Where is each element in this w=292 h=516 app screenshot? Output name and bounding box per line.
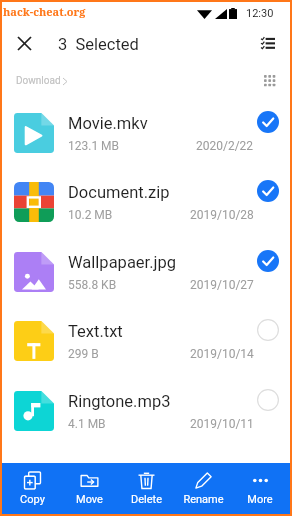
button[interactable]: Ringtone.mp3	[2, 376, 290, 446]
staticText: 2019/10/28	[190, 208, 254, 222]
staticText: 558.8 KB	[68, 278, 117, 292]
staticText: Ringtone.mp3	[68, 392, 171, 411]
button[interactable]: Select all	[254, 29, 282, 57]
staticText: 2019/10/11	[190, 417, 254, 431]
button[interactable]: Not selected	[257, 319, 279, 341]
staticText: Movie.mkv	[68, 114, 148, 133]
staticText: 3 Selected	[58, 35, 139, 54]
button[interactable]: Text.txt	[2, 306, 290, 376]
button[interactable]: Selected	[257, 111, 279, 133]
staticText: 299 B	[68, 347, 99, 361]
button[interactable]: Document.zip	[2, 167, 290, 237]
button[interactable]: Wallpapaer.jpg	[2, 237, 290, 307]
staticText: 2019/10/14	[190, 347, 254, 361]
button[interactable]: Movie.mkv	[2, 98, 290, 168]
staticText: Rename	[183, 493, 224, 506]
staticText: 2020/2/22	[196, 139, 254, 153]
button[interactable]: More	[233, 463, 287, 514]
button[interactable]: Delete	[119, 463, 173, 514]
staticText: Delete	[131, 493, 162, 506]
button[interactable]: Close selection	[10, 29, 38, 57]
staticText: Text.txt	[68, 322, 123, 341]
button[interactable]: Move	[62, 463, 116, 514]
button[interactable]: Grid view	[259, 70, 281, 92]
staticText: Wallpapaer.jpg	[68, 253, 177, 272]
staticText: Move	[76, 493, 103, 506]
button[interactable]: Selected	[257, 180, 279, 202]
staticText: Document.zip	[68, 183, 170, 202]
button[interactable]: Not selected	[257, 389, 279, 411]
button[interactable]: Copy	[5, 463, 59, 514]
staticText: 10.2 MB	[68, 208, 113, 222]
staticText: hack-cheat.org	[3, 4, 86, 19]
staticText: Copy	[20, 493, 45, 506]
button[interactable]: Selected	[257, 250, 279, 272]
staticText: 12:30	[246, 7, 274, 20]
staticText: Download	[16, 75, 61, 87]
staticText: 123.1 MB	[68, 139, 120, 153]
staticText: 2019/10/27	[190, 278, 254, 292]
staticText: More	[247, 493, 273, 506]
button[interactable]: Rename	[176, 463, 230, 514]
staticText: 4.1 MB	[68, 417, 106, 431]
button[interactable]: Download	[16, 75, 67, 87]
